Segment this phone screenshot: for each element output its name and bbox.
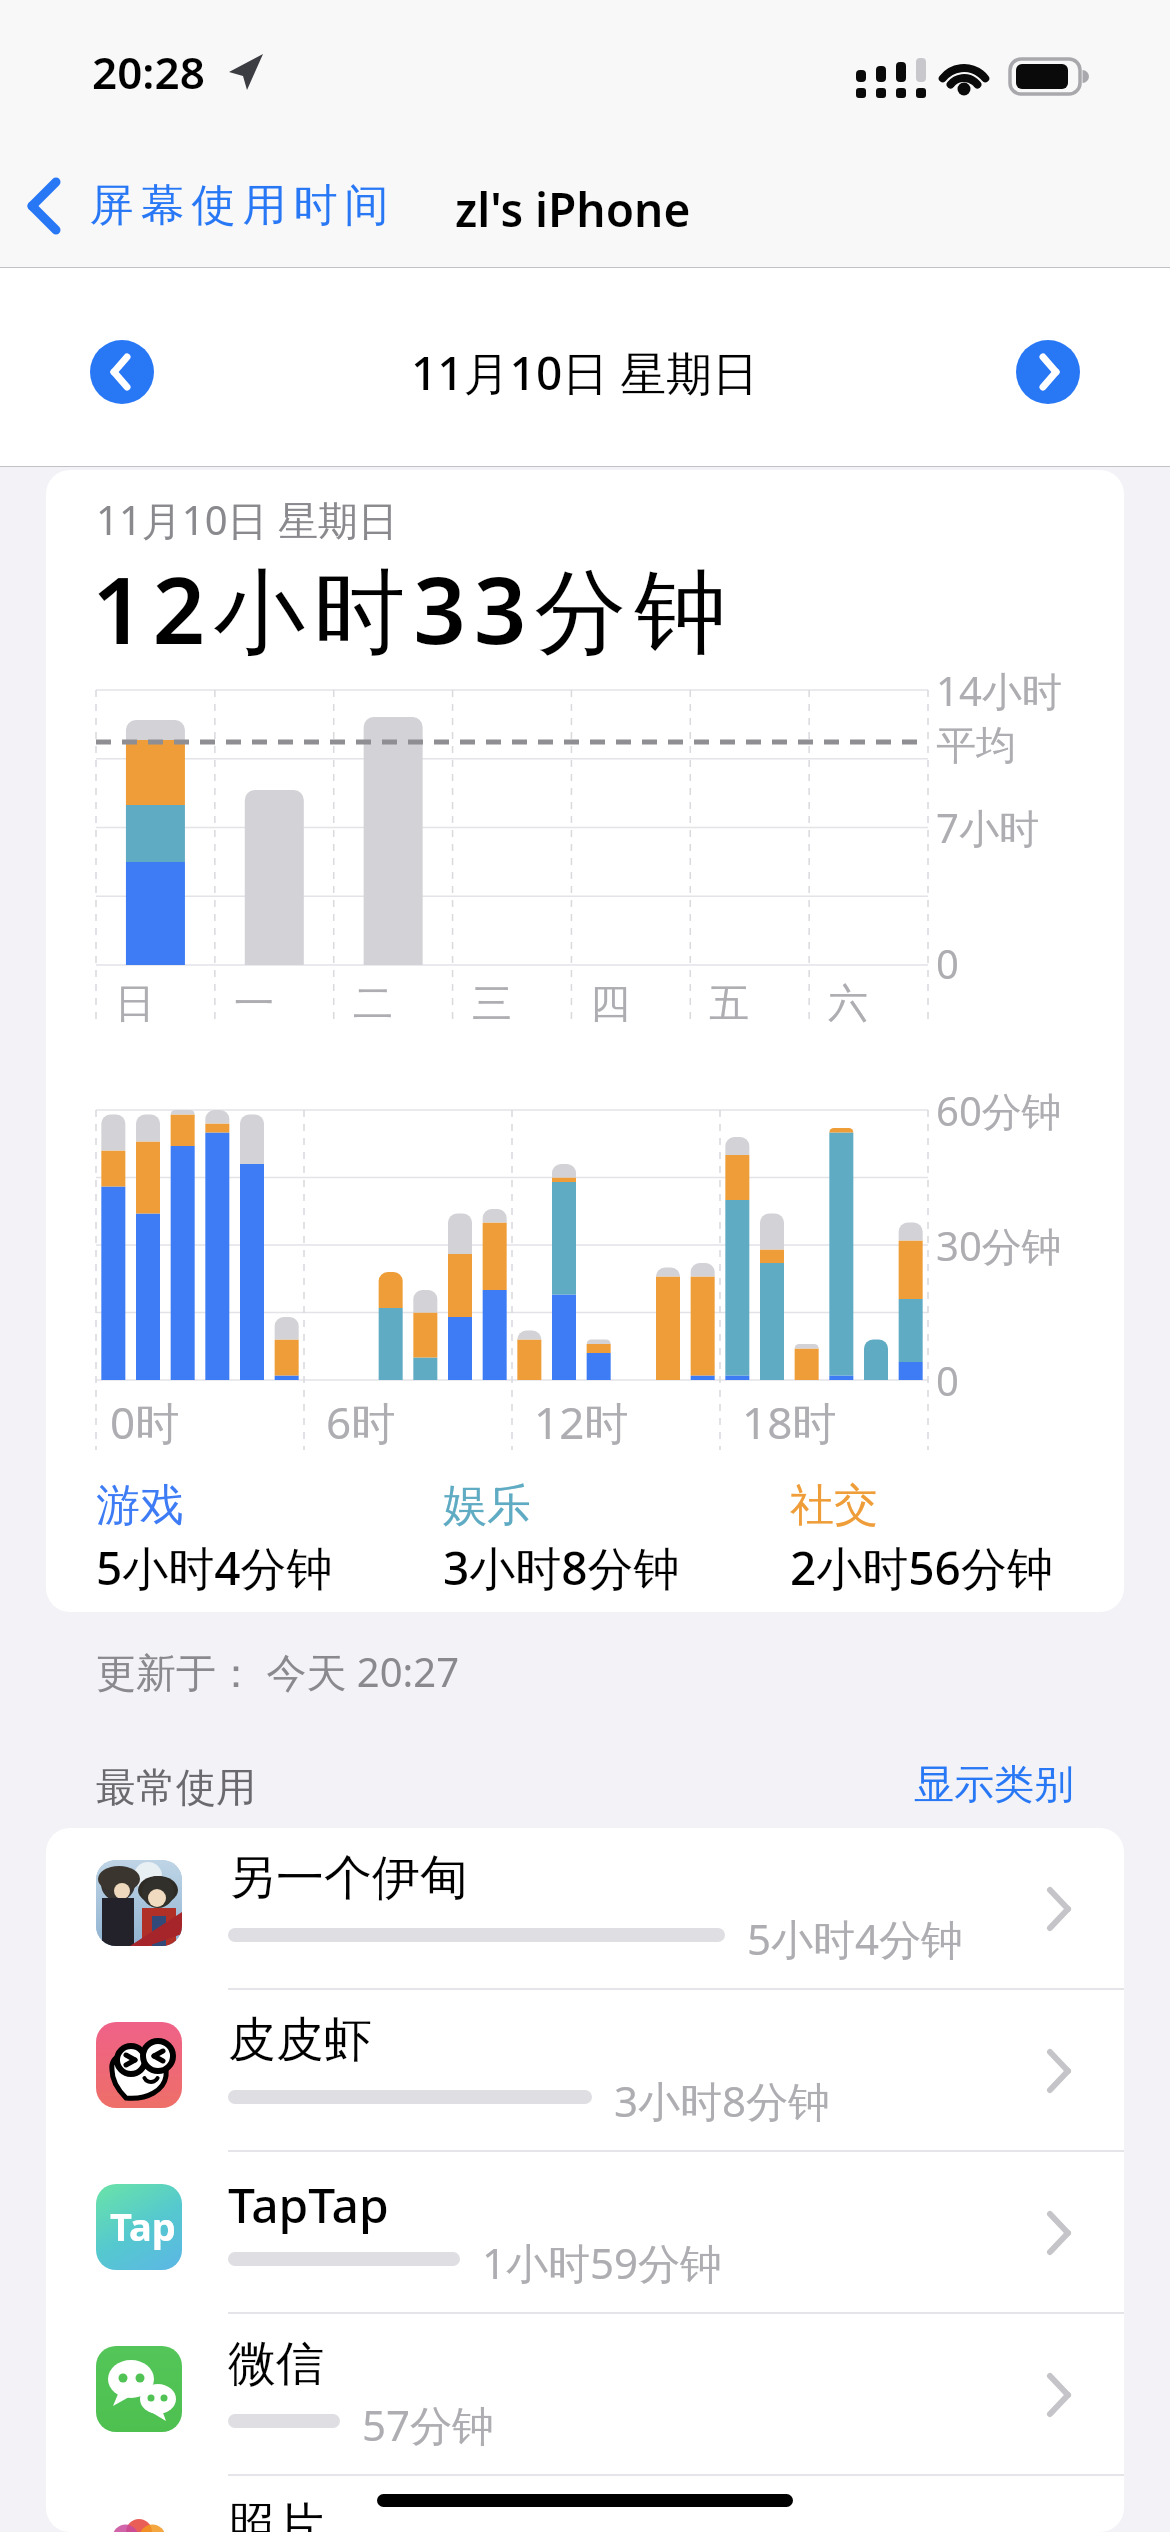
button[interactable] <box>1016 340 1080 404</box>
button[interactable] <box>46 2152 1124 2314</box>
staticText: 日 <box>115 978 155 1028</box>
staticText: 18时 <box>742 1392 837 1448</box>
staticText: 屏幕使用时间 <box>86 178 392 233</box>
staticText: 11月10日 星期日 <box>411 341 759 404</box>
staticText: 30分钟 <box>936 1218 1062 1273</box>
staticText: 1小时59分钟 <box>482 2234 723 2291</box>
staticText: 皮皮虾 <box>228 2010 372 2070</box>
staticText: 五 <box>709 978 749 1028</box>
button[interactable] <box>46 2476 1124 2532</box>
staticText: 社交 <box>790 1478 878 1533</box>
staticText: 5小时4分钟 <box>96 1536 333 1599</box>
staticText: 60分钟 <box>936 1083 1062 1138</box>
staticText: 7小时 <box>936 800 1039 855</box>
staticText: 6时 <box>326 1392 396 1448</box>
staticText: 0 <box>936 936 959 990</box>
button[interactable] <box>90 340 154 404</box>
staticText: 娱乐 <box>443 1478 531 1533</box>
staticText: 更新于： 今天 20:27 <box>96 1644 460 1699</box>
staticText: 57分钟 <box>362 2396 495 2453</box>
staticText: 20:28 <box>92 42 205 102</box>
button[interactable]: 屏幕使用时间 <box>20 172 440 242</box>
staticText: 12时 <box>534 1392 629 1448</box>
staticText: 四 <box>590 978 630 1028</box>
staticText: 二 <box>353 978 393 1028</box>
staticText: 游戏 <box>96 1478 184 1533</box>
staticText: 三 <box>472 978 512 1028</box>
staticText: 5小时4分钟 <box>747 1910 964 1967</box>
button[interactable] <box>46 1990 1124 2152</box>
staticText: 0 <box>936 1353 959 1407</box>
staticText: Tap <box>110 2200 176 2252</box>
staticText: 3小时8分钟 <box>614 2072 831 2129</box>
staticText: 微信 <box>228 2334 324 2394</box>
staticText: 显示类别 <box>914 1759 1074 1809</box>
staticText: TapTap <box>228 2172 389 2237</box>
staticText: zl's iPhone <box>455 178 691 241</box>
staticText: 六 <box>828 978 868 1028</box>
button[interactable]: 显示类别 <box>894 1756 1074 1812</box>
button[interactable] <box>46 1828 1124 1990</box>
staticText: 2小时56分钟 <box>790 1536 1053 1599</box>
staticText: 14小时 <box>936 663 1062 718</box>
staticText: 一 <box>234 978 274 1028</box>
staticText: 平均 <box>936 720 1016 770</box>
staticText: 11月10日 星期日 <box>96 492 398 547</box>
staticText: 照片 <box>228 2496 324 2532</box>
staticText: 最常使用 <box>96 1762 256 1812</box>
staticText: 0时 <box>110 1392 180 1448</box>
staticText: 12小时33分钟 <box>92 546 735 672</box>
staticText: 3小时8分钟 <box>443 1536 680 1599</box>
button[interactable] <box>46 2314 1124 2476</box>
staticText: 另一个伊甸 <box>228 1848 468 1908</box>
